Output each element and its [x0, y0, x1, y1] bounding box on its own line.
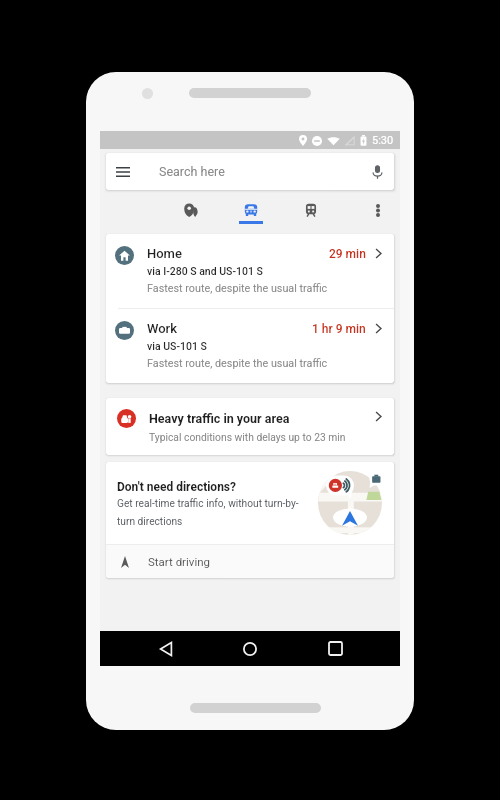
staticText: Start driving	[148, 555, 210, 568]
button[interactable]: Home	[106, 234, 394, 308]
staticText: Search here	[159, 164, 225, 179]
staticText: Heavy traffic in your area	[149, 411, 290, 426]
button[interactable]: Home	[228, 631, 272, 666]
staticText: Fastest route, despite the usual traffic	[147, 282, 328, 295]
staticText: via US-101 S	[147, 340, 207, 352]
staticText: Get real-time traffic info, without turn…	[117, 498, 299, 528]
button[interactable]: Voice search	[360, 153, 394, 190]
button[interactable]: Transit	[293, 195, 329, 225]
staticText: 1 hr 9 min	[312, 322, 366, 336]
staticText: Don't need directions?	[117, 480, 237, 494]
staticText: 5:30	[372, 134, 394, 147]
button[interactable]: More options	[364, 195, 392, 225]
button[interactable]: Explore	[173, 195, 209, 225]
button[interactable]: Heavy traffic in your area	[106, 398, 394, 455]
staticText: Home	[147, 246, 182, 261]
button[interactable]: Recents	[313, 631, 357, 666]
button[interactable]: Back	[144, 631, 188, 666]
button[interactable]: Start driving	[106, 545, 394, 578]
button[interactable]: Menu	[106, 153, 140, 190]
staticText: 29 min	[329, 247, 366, 261]
staticText: Work	[147, 321, 177, 336]
staticText: Typical conditions with delays up to 23 …	[149, 431, 346, 443]
button[interactable]: Menu	[106, 153, 394, 190]
button[interactable]: Driving	[233, 195, 269, 225]
button[interactable]: Work	[106, 309, 394, 383]
staticText: via I-280 S and US-101 S	[147, 265, 263, 277]
staticText: Fastest route, despite the usual traffic	[147, 357, 328, 370]
